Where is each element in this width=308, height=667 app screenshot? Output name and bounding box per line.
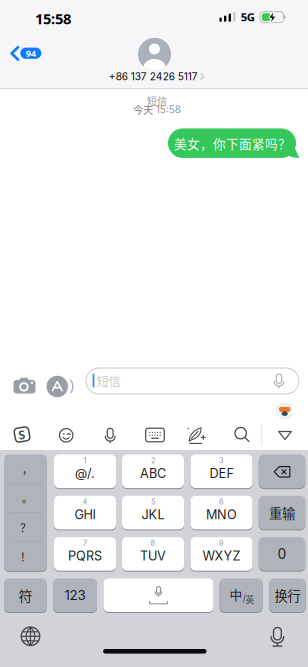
button[interactable]: 7 <box>54 537 116 572</box>
button[interactable]: Search <box>234 427 250 442</box>
button[interactable]: Voice input <box>105 428 115 443</box>
staticText: 123 <box>64 587 85 603</box>
button[interactable]: Next keyboard <box>21 627 40 646</box>
staticText: 短信 <box>96 372 120 390</box>
staticText: 英 <box>245 593 254 606</box>
button[interactable]: 换行 <box>269 578 306 613</box>
staticText: GHI <box>74 507 95 522</box>
staticText: 重输 <box>269 503 295 522</box>
staticText: 4 <box>82 497 87 506</box>
button[interactable]: ！ <box>4 542 47 571</box>
staticText: 6 <box>219 497 224 506</box>
button[interactable]: Delete <box>259 454 305 489</box>
button[interactable]: Keyboard switch <box>145 428 164 442</box>
button[interactable]: Camera <box>13 377 35 393</box>
button[interactable]: Back <box>9 46 43 61</box>
staticText: ABC <box>140 466 166 481</box>
staticText: 1 <box>83 456 86 465</box>
staticText: 94 <box>26 47 36 59</box>
staticText: MNO <box>206 507 237 522</box>
button[interactable]: iMessage apps <box>46 376 74 397</box>
staticText: PQRS <box>68 548 102 563</box>
button[interactable]: Contact details <box>104 37 204 82</box>
button[interactable]: Dictation <box>270 626 285 646</box>
button[interactable]: 6 <box>190 496 252 530</box>
staticText: 符 <box>18 585 32 605</box>
button[interactable]: Emoji <box>59 428 73 442</box>
button[interactable]: 2 <box>122 454 184 489</box>
staticText: DEF <box>209 466 233 481</box>
button[interactable]: Message field <box>86 368 299 394</box>
button[interactable]: 符 <box>4 578 47 613</box>
button[interactable]: 5 <box>122 496 184 530</box>
button[interactable]: Chinese / English <box>219 578 262 613</box>
staticText: +86 137 2426 5117 <box>109 70 198 83</box>
button[interactable]: 123 <box>53 578 97 613</box>
staticText: ！ <box>20 548 31 565</box>
button[interactable]: 1 <box>54 454 116 489</box>
staticText: 。 <box>22 490 33 505</box>
button[interactable]: 4 <box>54 496 116 530</box>
staticText: S <box>18 426 25 443</box>
staticText: 换行 <box>274 585 300 605</box>
staticText: 7 <box>83 539 87 548</box>
staticText: ？ <box>20 519 31 535</box>
staticText: 15:58 <box>35 8 71 28</box>
staticText: 中 <box>229 585 242 603</box>
staticText: 3 <box>219 456 224 465</box>
button[interactable]: Hide keyboard <box>278 431 292 440</box>
button[interactable]: 3 <box>190 454 252 489</box>
button[interactable]: 0 <box>259 537 305 572</box>
staticText: WXYZ <box>202 548 240 563</box>
staticText: TUV <box>140 548 166 563</box>
button[interactable]: 9 <box>190 537 252 572</box>
staticText: 美女，你下面紧吗？ <box>174 134 291 152</box>
staticText: ， <box>22 461 33 477</box>
staticText: @/. <box>75 466 95 481</box>
staticText: 8 <box>150 539 155 548</box>
staticText: 5 <box>151 497 155 506</box>
staticText: 5G <box>241 9 255 24</box>
button[interactable]: 。 <box>4 484 47 513</box>
staticText: 2 <box>151 456 155 465</box>
staticText: JKL <box>141 507 164 522</box>
button[interactable]: Space <box>103 578 213 613</box>
button[interactable]: ， <box>4 454 47 484</box>
staticText: 15:58 <box>156 104 181 116</box>
staticText: 9 <box>219 539 224 548</box>
button[interactable]: Sticker suggestion <box>277 403 292 419</box>
staticText: 0 <box>277 545 286 562</box>
button[interactable]: ？ <box>4 513 47 542</box>
staticText: 今天 <box>133 102 153 117</box>
staticText: 短信 <box>147 94 167 108</box>
button[interactable]: Handwriting <box>187 427 205 444</box>
button[interactable]: 重输 <box>259 496 305 530</box>
button[interactable]: 8 <box>122 537 184 572</box>
button[interactable]: Sogou input <box>13 426 30 443</box>
staticText: / <box>242 593 245 604</box>
